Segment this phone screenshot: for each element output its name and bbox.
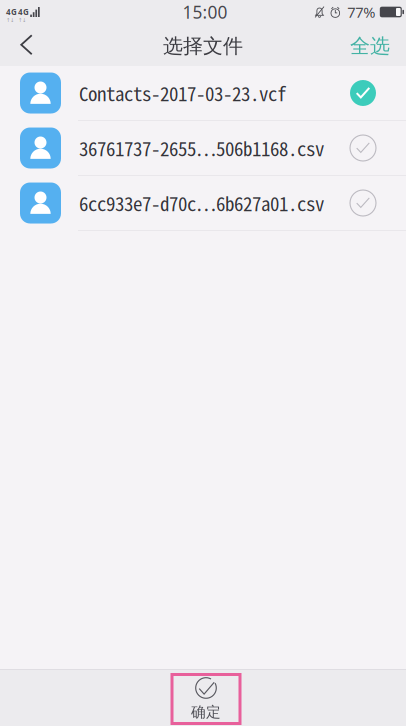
button[interactable]: 36761737-2655⋯506b1168.csv	[0, 121, 406, 176]
staticText: 4G	[18, 6, 29, 17]
button[interactable]: 全选	[334, 26, 406, 66]
staticText: Contacts-2017-03-23.vcf	[79, 79, 286, 107]
button[interactable]: 确定	[169, 673, 237, 722]
staticText: 77%	[347, 2, 375, 22]
button[interactable]: Contacts-2017-03-23.vcf	[0, 66, 406, 121]
staticText: 全选	[350, 34, 390, 58]
staticText: 确定	[191, 703, 221, 721]
button[interactable]: 6cc933e7-d70c⋯6b627a01.csv	[0, 176, 406, 231]
staticText: ↑↓	[18, 17, 26, 23]
staticText: 选择文件	[163, 34, 243, 58]
staticText: 15:00	[182, 0, 227, 23]
staticText: 6cc933e7-d70c⋯6b627a01.csv	[79, 189, 324, 217]
staticText: 4G	[6, 6, 17, 17]
staticText: ↑↓	[6, 17, 14, 23]
button[interactable]: Back	[0, 26, 51, 66]
staticText: 36761737-2655⋯506b1168.csv	[79, 134, 324, 162]
